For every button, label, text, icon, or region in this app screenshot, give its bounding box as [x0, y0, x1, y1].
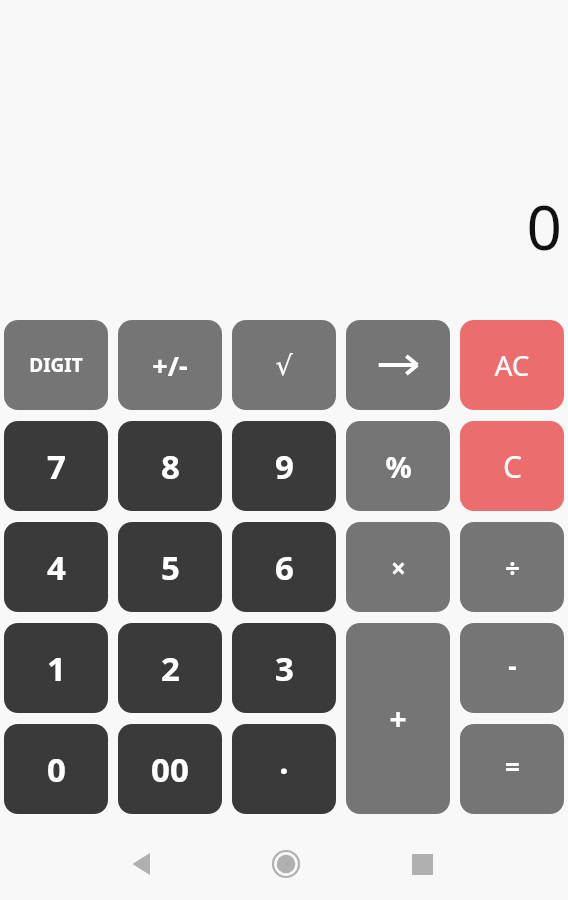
button[interactable]: +: [346, 623, 450, 814]
button[interactable]: 0: [4, 724, 108, 814]
button[interactable]: 7: [4, 421, 108, 511]
button[interactable]: Home: [262, 840, 310, 888]
button[interactable]: 2: [118, 623, 222, 713]
staticText: AC: [494, 346, 530, 384]
staticText: 7: [47, 444, 66, 489]
button[interactable]: ×: [346, 522, 450, 612]
staticText: =: [505, 749, 520, 784]
button[interactable]: DIGIT: [4, 320, 108, 410]
staticText: .: [279, 739, 289, 784]
staticText: 6: [275, 545, 294, 590]
staticText: 9: [275, 444, 294, 489]
button[interactable]: 9: [232, 421, 336, 511]
staticText: √: [275, 350, 293, 381]
button[interactable]: -: [460, 623, 564, 713]
button[interactable]: 00: [118, 724, 222, 814]
staticText: 2: [161, 646, 180, 691]
button[interactable]: Back: [118, 840, 166, 888]
staticText: 3: [275, 646, 294, 691]
button[interactable]: 8: [118, 421, 222, 511]
button[interactable]: 1: [4, 623, 108, 713]
button[interactable]: ÷: [460, 522, 564, 612]
button[interactable]: 3: [232, 623, 336, 713]
button[interactable]: 4: [4, 522, 108, 612]
button[interactable]: +/-: [118, 320, 222, 410]
button[interactable]: C: [460, 421, 564, 511]
staticText: 0: [47, 747, 66, 792]
button[interactable]: √: [232, 320, 336, 410]
button[interactable]: 5: [118, 522, 222, 612]
staticText: -: [508, 648, 517, 683]
staticText: C: [503, 446, 522, 487]
staticText: ×: [391, 550, 406, 585]
button[interactable]: =: [460, 724, 564, 814]
staticText: 1: [47, 646, 66, 691]
staticText: +: [389, 698, 407, 739]
staticText: %: [385, 447, 412, 486]
staticText: 4: [47, 545, 66, 590]
staticText: +/-: [152, 347, 188, 384]
button[interactable]: .: [232, 724, 336, 814]
staticText: ÷: [505, 550, 520, 585]
button[interactable]: Recent apps: [398, 840, 446, 888]
staticText: 5: [161, 545, 180, 590]
staticText: 8: [161, 444, 180, 489]
button[interactable]: Backspace: [346, 320, 450, 410]
staticText: 0: [526, 184, 562, 268]
button[interactable]: 6: [232, 522, 336, 612]
button[interactable]: AC: [460, 320, 564, 410]
button[interactable]: %: [346, 421, 450, 511]
staticText: DIGIT: [29, 352, 83, 378]
staticText: 00: [151, 747, 189, 792]
